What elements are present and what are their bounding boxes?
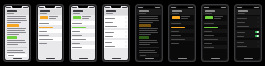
button[interactable] <box>203 45 227 49</box>
button[interactable] <box>104 24 128 28</box>
button[interactable]: Toggle setting <box>236 30 260 34</box>
button[interactable] <box>236 44 260 48</box>
button[interactable] <box>38 21 62 25</box>
button[interactable] <box>71 9 95 15</box>
button[interactable] <box>7 54 27 57</box>
button[interactable] <box>104 40 128 44</box>
button[interactable] <box>71 37 95 41</box>
button[interactable]: Toggle setting <box>255 31 259 33</box>
button[interactable] <box>203 29 227 33</box>
button[interactable] <box>236 16 260 20</box>
button[interactable] <box>203 21 227 25</box>
button[interactable] <box>104 20 128 24</box>
button[interactable] <box>236 9 260 15</box>
button[interactable] <box>71 25 95 29</box>
button[interactable] <box>71 45 95 49</box>
button[interactable] <box>203 9 227 15</box>
button[interactable] <box>236 24 260 28</box>
button[interactable] <box>170 41 194 45</box>
button[interactable]: Toggle setting <box>236 34 260 38</box>
button[interactable] <box>139 54 159 57</box>
button[interactable] <box>38 29 62 33</box>
button[interactable] <box>104 34 128 38</box>
button[interactable] <box>38 15 62 20</box>
button[interactable] <box>170 29 194 33</box>
button[interactable] <box>170 33 194 37</box>
button[interactable] <box>203 41 227 45</box>
button[interactable] <box>236 20 260 24</box>
button[interactable] <box>7 24 19 27</box>
button[interactable] <box>170 37 194 41</box>
button[interactable] <box>38 9 62 15</box>
button[interactable] <box>71 41 95 45</box>
button[interactable] <box>236 40 260 44</box>
button[interactable] <box>104 30 128 34</box>
button[interactable] <box>170 25 194 29</box>
button[interactable] <box>71 29 95 33</box>
button[interactable] <box>170 15 194 20</box>
button[interactable] <box>38 37 62 41</box>
button[interactable] <box>203 15 227 20</box>
button[interactable] <box>203 25 227 29</box>
button[interactable] <box>38 41 62 45</box>
button[interactable] <box>7 36 17 39</box>
button[interactable] <box>104 9 128 15</box>
button[interactable] <box>139 24 151 27</box>
button[interactable] <box>139 36 149 39</box>
button[interactable] <box>5 9 29 15</box>
button[interactable] <box>203 33 227 37</box>
button[interactable] <box>137 9 161 15</box>
button[interactable]: Toggle setting <box>255 35 259 37</box>
button[interactable] <box>38 33 62 37</box>
button[interactable] <box>71 15 95 20</box>
button[interactable] <box>104 44 128 48</box>
button[interactable] <box>71 21 95 25</box>
button[interactable] <box>71 33 95 37</box>
button[interactable] <box>38 25 62 29</box>
button[interactable] <box>203 37 227 41</box>
button[interactable] <box>104 16 128 20</box>
button[interactable] <box>170 21 194 25</box>
button[interactable] <box>170 9 194 15</box>
